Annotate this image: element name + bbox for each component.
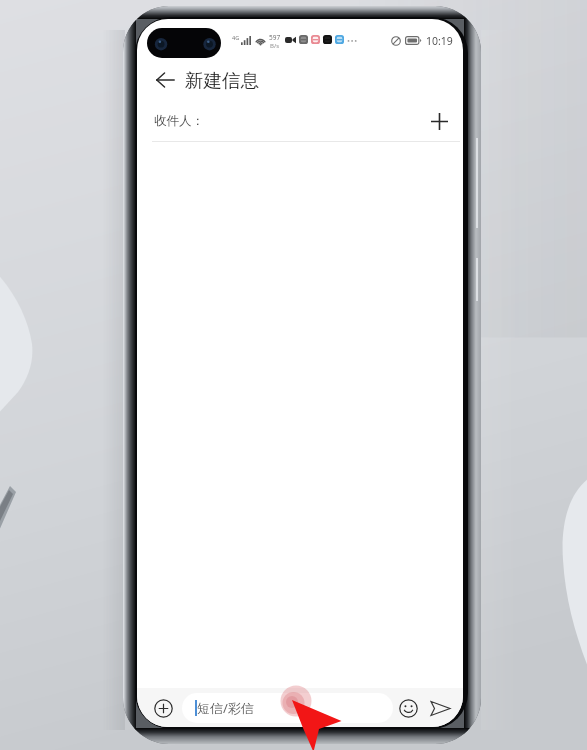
button[interactable]: 短信/彩信 bbox=[182, 693, 393, 723]
staticText: 10:19 bbox=[426, 34, 453, 48]
button[interactable]: Emoji bbox=[393, 693, 423, 723]
button[interactable]: 收件人： bbox=[137, 101, 463, 141]
staticText: 新建信息 bbox=[185, 69, 259, 92]
button[interactable]: Add attachment bbox=[148, 693, 178, 723]
staticText: 短信/彩信 bbox=[197, 699, 254, 717]
staticText: 收件人： bbox=[154, 113, 204, 129]
staticText: 4G bbox=[232, 34, 240, 41]
button[interactable]: Send bbox=[425, 693, 455, 723]
button[interactable]: Back bbox=[147, 62, 183, 98]
button[interactable]: Add recipient bbox=[422, 104, 456, 138]
staticText: B/s bbox=[270, 42, 280, 48]
staticText: 597 bbox=[269, 33, 281, 42]
